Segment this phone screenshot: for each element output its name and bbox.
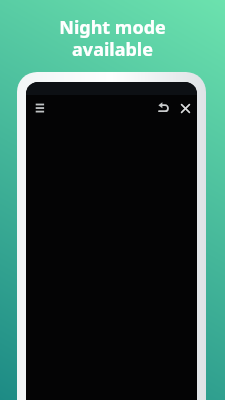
button[interactable] [33, 101, 47, 115]
button[interactable] [178, 101, 192, 115]
staticText: Night mode available [59, 15, 166, 62]
button[interactable] [157, 101, 171, 115]
